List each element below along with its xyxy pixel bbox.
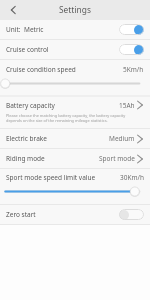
staticText: 5Km/h: [123, 65, 144, 74]
button[interactable]: Battery capacity: [0, 97, 150, 113]
button[interactable]: Off: [119, 209, 144, 220]
staticText: Sport mode speed limit value: [6, 173, 96, 182]
staticText: Sport mode: [99, 154, 135, 163]
button[interactable]: Cruise control: [0, 40, 150, 59]
staticText: Settings: [59, 4, 91, 15]
staticText: Cruise condition speed: [6, 65, 76, 74]
button[interactable]: On: [119, 44, 144, 55]
staticText: Please choose the matching battery capac…: [6, 113, 130, 123]
button[interactable]: Cruise condition speed: [0, 60, 150, 78]
staticText: Battery capacity: [6, 101, 55, 110]
button[interactable]: Back: [0, 0, 24, 20]
staticText: Cruise control: [6, 45, 49, 54]
button[interactable]: Unit:: [0, 20, 150, 39]
button[interactable]: Zero start: [0, 205, 150, 224]
button[interactable]: Riding mode: [0, 149, 150, 168]
staticText: Medium: [109, 134, 135, 143]
staticText: Riding mode: [6, 154, 45, 163]
button[interactable]: On: [119, 24, 144, 35]
staticText: Metric: [24, 25, 44, 34]
staticText: Unit:: [6, 25, 21, 34]
button[interactable]: Sport mode speed limit value: [0, 169, 150, 186]
staticText: Electric brake: [6, 134, 47, 143]
staticText: 30Km/h: [120, 173, 144, 182]
staticText: Zero start: [6, 210, 36, 219]
button[interactable]: Electric brake: [0, 129, 150, 148]
staticText: 15Ah: [119, 101, 135, 110]
